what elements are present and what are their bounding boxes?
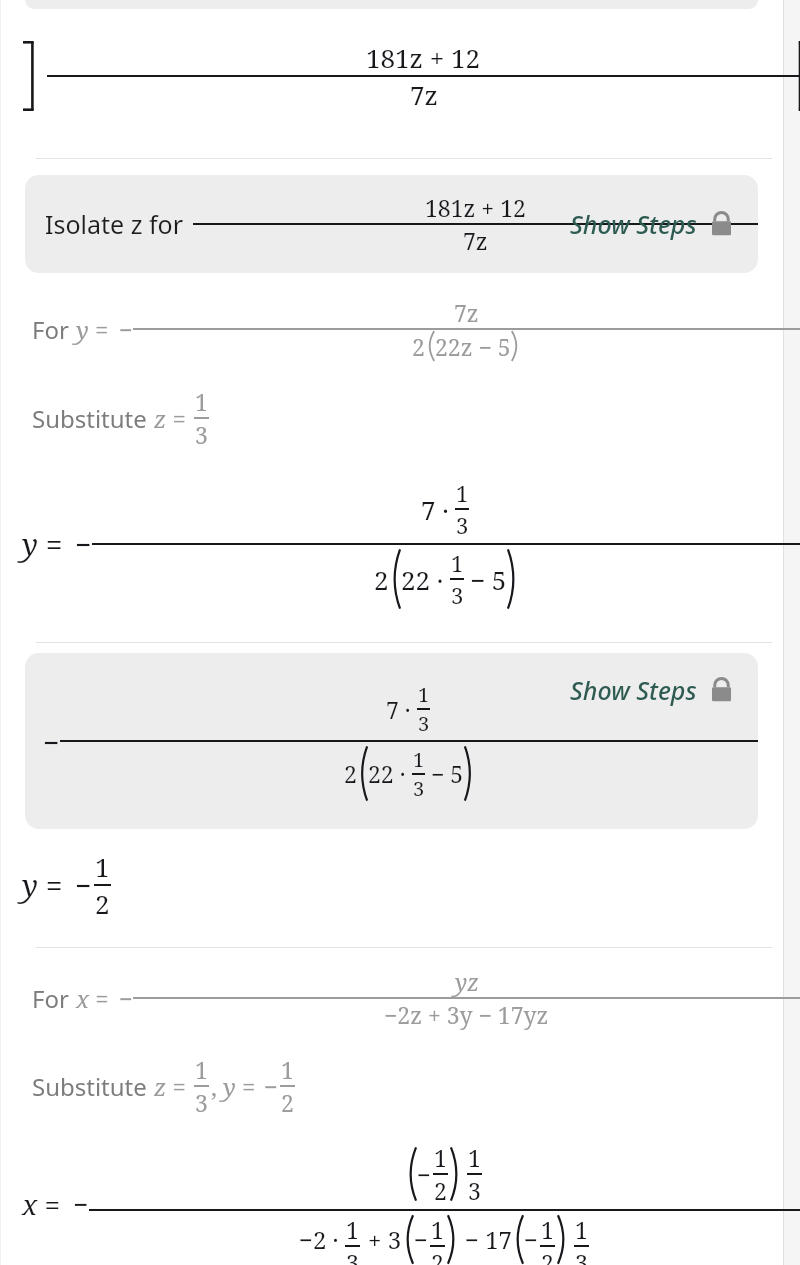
- staticText: 3: [456, 510, 469, 540]
- staticText: Isolate z for: [45, 207, 183, 241]
- staticText: 2: [412, 331, 425, 362]
- staticText: yz: [455, 966, 479, 997]
- staticText: 2: [431, 1247, 444, 1265]
- staticText: Show Steps: [570, 673, 697, 707]
- staticText: 1: [346, 1214, 359, 1245]
- button[interactable]: Isolate z for: [25, 175, 758, 273]
- staticText: + 3: [368, 1223, 402, 1256]
- staticText: − 17: [465, 1223, 512, 1256]
- staticText: 181z + 12: [425, 192, 526, 223]
- staticText: −: [119, 313, 133, 346]
- staticText: Substitute: [32, 1070, 154, 1103]
- staticText: ,: [211, 1070, 217, 1103]
- staticText: 3: [418, 710, 430, 737]
- staticText: 2: [95, 886, 110, 921]
- other: Locked: [709, 210, 734, 238]
- staticText: z =: [154, 402, 186, 435]
- staticText: −: [43, 723, 60, 761]
- staticText: 2: [434, 1175, 447, 1206]
- staticText: 1: [195, 1054, 208, 1085]
- other: Locked: [709, 676, 734, 704]
- staticText: −2z + 3y − 17yz: [384, 999, 549, 1030]
- staticText: −: [524, 1223, 538, 1256]
- staticText: 1: [541, 1214, 554, 1245]
- staticText: 3: [195, 419, 208, 450]
- staticText: −: [417, 1158, 431, 1191]
- staticText: 3: [468, 1175, 481, 1206]
- staticText: 2: [281, 1087, 294, 1118]
- staticText: For: [32, 982, 76, 1015]
- staticText: x =: [76, 982, 109, 1015]
- staticText: y =: [223, 1070, 256, 1103]
- staticText: For: [32, 313, 76, 346]
- staticText: 7 ·: [421, 492, 449, 527]
- staticText: y =: [22, 524, 63, 565]
- staticText: y =: [22, 865, 63, 906]
- staticText: 1: [281, 1054, 294, 1085]
- staticText: 3: [575, 1247, 588, 1265]
- staticText: y =: [76, 313, 109, 346]
- staticText: 22z − 5: [435, 331, 511, 362]
- staticText: 181z + 12: [366, 40, 481, 75]
- staticText: −: [75, 525, 92, 563]
- staticText: 7 ·: [386, 694, 411, 725]
- staticText: 22 ·: [368, 758, 406, 789]
- staticText: 1: [434, 1142, 447, 1173]
- staticText: Substitute: [32, 402, 154, 435]
- staticText: 1: [195, 386, 208, 417]
- staticText: 3: [195, 1087, 208, 1118]
- staticText: −: [73, 1186, 89, 1221]
- button[interactable]: Show Steps: [566, 671, 738, 709]
- staticText: 3: [413, 775, 425, 802]
- staticText: 1: [431, 1214, 444, 1245]
- staticText: − 5: [431, 758, 464, 789]
- staticText: 1: [468, 1142, 481, 1173]
- staticText: −2 ·: [299, 1223, 339, 1256]
- button[interactable]: −: [25, 653, 758, 829]
- staticText: −: [414, 1223, 428, 1256]
- button[interactable]: Show Steps: [566, 205, 738, 243]
- staticText: 2: [541, 1247, 554, 1265]
- staticText: 2: [374, 562, 389, 597]
- staticText: 3: [451, 580, 464, 610]
- staticText: 7z: [410, 77, 438, 112]
- staticText: 1: [418, 681, 430, 708]
- staticText: 3: [346, 1247, 359, 1265]
- staticText: Show Steps: [570, 207, 697, 241]
- staticText: − 5: [470, 562, 507, 597]
- staticText: −: [264, 1070, 278, 1103]
- staticText: 1: [451, 548, 464, 578]
- staticText: 1: [95, 849, 110, 884]
- staticText: 1: [456, 478, 469, 508]
- staticText: −: [75, 866, 92, 904]
- staticText: x =: [22, 1185, 61, 1223]
- staticText: 2: [344, 758, 357, 789]
- staticText: 1: [575, 1214, 588, 1245]
- staticText: z =: [154, 1070, 186, 1103]
- staticText: 1: [413, 746, 425, 773]
- staticText: −: [119, 982, 133, 1015]
- staticText: 7z: [463, 225, 488, 256]
- staticText: 7z: [454, 297, 479, 328]
- staticText: 22 ·: [401, 562, 444, 597]
